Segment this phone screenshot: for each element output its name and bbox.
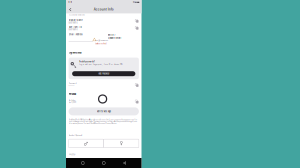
staticText: Password xyxy=(69,82,77,84)
button[interactable]: Add Passkey xyxy=(72,71,135,76)
button[interactable]: Verify My Age xyxy=(69,107,139,115)
button[interactable]: Copy display name xyxy=(135,19,139,23)
staticText: username xyxy=(69,28,78,31)
button[interactable]: Copy user id xyxy=(135,26,139,30)
staticText: Display Name xyxy=(69,19,83,21)
staticText: •••••• xyxy=(69,84,75,86)
staticText: Email Address xyxy=(69,33,83,36)
staticText: Living Age xyxy=(69,153,76,155)
staticText: Gender (Optional) xyxy=(69,134,83,136)
staticText: Log in with just fingerprint, face ID or… xyxy=(79,63,123,65)
button[interactable]: Edit password xyxy=(135,83,139,87)
staticText: By clicking 'Verify My Age' you will be … xyxy=(69,119,138,124)
staticText: ACCOUNT INFORMATION xyxy=(69,14,85,16)
button[interactable]: Verify / xyxy=(108,34,122,39)
staticText: Apr 1, 2001 xyxy=(69,101,77,103)
button[interactable]: Female xyxy=(104,139,139,148)
staticText: Tired of passwords? xyxy=(79,60,95,63)
staticText: Personal xyxy=(69,93,77,95)
staticText: Update Email xyxy=(108,37,122,39)
button[interactable]: Home xyxy=(100,158,108,168)
button[interactable]: Edit birthday xyxy=(135,100,139,104)
staticText: username xyxy=(69,22,78,24)
staticText: Account Info xyxy=(94,8,114,11)
staticText: Add Passkey xyxy=(98,72,109,75)
button[interactable]: Recent apps xyxy=(79,158,87,168)
staticText: Verify My Age xyxy=(97,110,111,113)
staticText: 9:41 xyxy=(68,1,72,3)
staticText: User (Ser) Id xyxy=(69,26,82,28)
staticText: user@name.com xyxy=(94,39,107,41)
button[interactable]: Back xyxy=(121,158,129,168)
staticText: Verify / xyxy=(108,34,116,36)
staticText: Login Methods xyxy=(69,52,82,54)
staticText: Birthday xyxy=(69,99,76,101)
staticText: Email not verified xyxy=(94,43,106,44)
button[interactable]: Back xyxy=(68,7,72,12)
button[interactable]: Male xyxy=(69,139,104,148)
staticText: 4G xyxy=(133,1,135,3)
